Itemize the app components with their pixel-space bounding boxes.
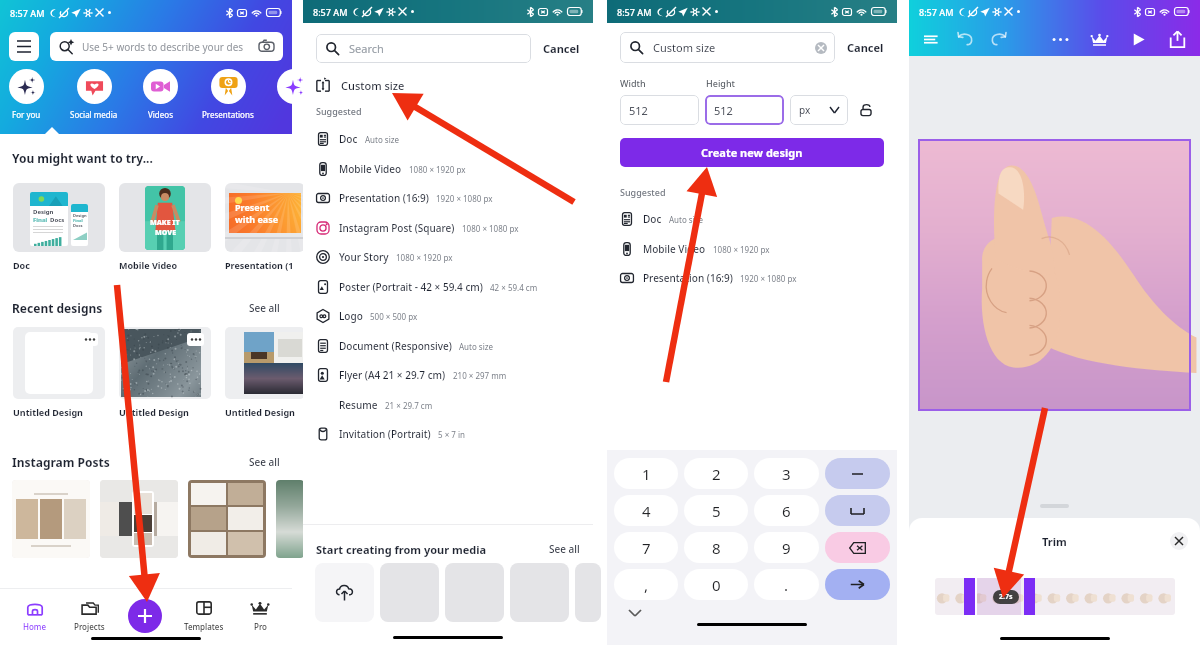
button[interactable]: Social media [61,69,127,120]
staticText: Create new design [701,145,803,160]
button[interactable]: Design [13,183,105,271]
button[interactable]: 6 [754,495,819,526]
staticText: Suggested [620,186,666,198]
button[interactable]: 0 [684,569,748,600]
button[interactable]: , [614,569,678,600]
button[interactable]: 2 [684,458,748,489]
button[interactable]: More options [1052,31,1069,48]
button[interactable] [100,480,178,558]
button[interactable]: See all [249,301,280,315]
staticText: Logo [339,309,363,323]
button[interactable]: Document (Responsive) [316,335,580,357]
button[interactable]: Lock aspect ratio [859,103,873,117]
button[interactable]: Flyer (A4 21 × 29.7 cm) [316,364,580,386]
staticText: Doc [339,132,358,146]
staticText: 7 [642,538,651,558]
button[interactable]: 512 [629,95,690,125]
button[interactable] [825,495,890,526]
button[interactable]: Poster (Portrait - 42 × 59.4 cm) [316,276,580,298]
button[interactable]: Backspace [825,532,890,563]
button[interactable]: Resume [316,394,580,416]
button[interactable]: Untitled Design [225,327,305,418]
staticText: Custom size [653,40,716,55]
staticText: Pro [254,621,267,632]
button[interactable]: More options [119,327,211,418]
button[interactable]: Logo [316,305,580,327]
button[interactable]: 9 [754,532,819,563]
button[interactable]: Presentations [195,69,261,120]
button[interactable] [510,563,569,622]
button[interactable]: Create new design [620,138,884,167]
staticText: 21 × 29.7 cm [385,400,433,411]
button[interactable]: P [261,69,327,120]
staticText: Height [706,77,735,89]
button[interactable]: More options [81,333,98,346]
button[interactable]: Mobile Video [620,238,884,260]
button[interactable]: Invitation (Portrait) [316,423,580,445]
button[interactable] [276,480,304,558]
button[interactable]: Pro [247,599,273,632]
staticText: Poster (Portrait - 42 × 59.4 cm) [339,280,483,294]
button[interactable]: Clear [815,42,827,54]
staticText: Presentation (16:9) [643,271,733,285]
button[interactable]: Home [19,599,51,632]
button[interactable]: Undo [957,31,974,48]
button[interactable]: Mobile Video [316,158,580,180]
button[interactable]: Close [1170,532,1188,550]
button[interactable]: Cancel [847,40,884,55]
button[interactable]: Create a design [128,599,162,633]
button[interactable]: Share [1169,31,1186,48]
button[interactable]: Custom size [630,32,827,63]
button[interactable]: Play [1130,31,1147,48]
other: Enter [850,579,865,590]
button[interactable]: Redo [990,31,1007,48]
button[interactable] [188,480,266,558]
button[interactable]: Menu [923,31,940,48]
button[interactable]: Doc [316,128,580,150]
button[interactable]: See all [249,455,280,469]
staticText: Templates [184,621,224,632]
button[interactable] [380,563,439,622]
button[interactable]: MAKE IT [119,183,211,271]
staticText: 0 [712,575,721,595]
button[interactable]: 7 [614,532,678,563]
button[interactable]: Your Story [316,246,580,268]
button[interactable]: Videos [127,69,193,120]
button[interactable]: Menu [9,32,39,61]
staticText: 3 [782,464,791,484]
button[interactable]: Presentation (16:9) [316,187,580,209]
button[interactable]: 4 [614,495,678,526]
button[interactable]: 5 [684,495,748,526]
button[interactable]: Presentation (16:9) [620,267,884,289]
button[interactable]: Present [225,183,305,271]
button[interactable]: Doc [620,208,884,230]
button[interactable]: Canva Pro [1091,31,1108,48]
button[interactable]: Upload media [315,563,374,622]
button[interactable]: Enter [825,569,890,600]
button[interactable]: Projects [70,599,109,632]
staticText: 5 [712,501,721,521]
button[interactable]: Templates [180,599,228,632]
button[interactable]: 512 [714,95,775,125]
button[interactable]: Search [326,34,521,63]
button[interactable]: Custom size [316,75,580,95]
staticText: See all [549,542,580,556]
button[interactable] [445,563,504,622]
button[interactable]: More options [187,333,204,346]
button[interactable]: 3 [754,458,819,489]
button[interactable]: Instagram Post (Square) [316,217,580,239]
button[interactable] [825,458,890,489]
button[interactable]: 1 [614,458,678,489]
button[interactable]: For you [0,69,59,120]
button[interactable]: Use 5+ words to describe your des [59,32,274,61]
button[interactable]: Cancel [543,41,580,56]
staticText: Presentations [202,109,254,120]
other: Backspace [849,542,866,554]
button[interactable]: px [799,95,839,125]
button[interactable] [12,480,90,558]
button[interactable]: 8 [684,532,748,563]
button[interactable]: More options [13,327,105,418]
staticText: Mobile Video [339,162,402,176]
button[interactable]: . [754,569,819,600]
button[interactable]: See all [549,542,580,556]
